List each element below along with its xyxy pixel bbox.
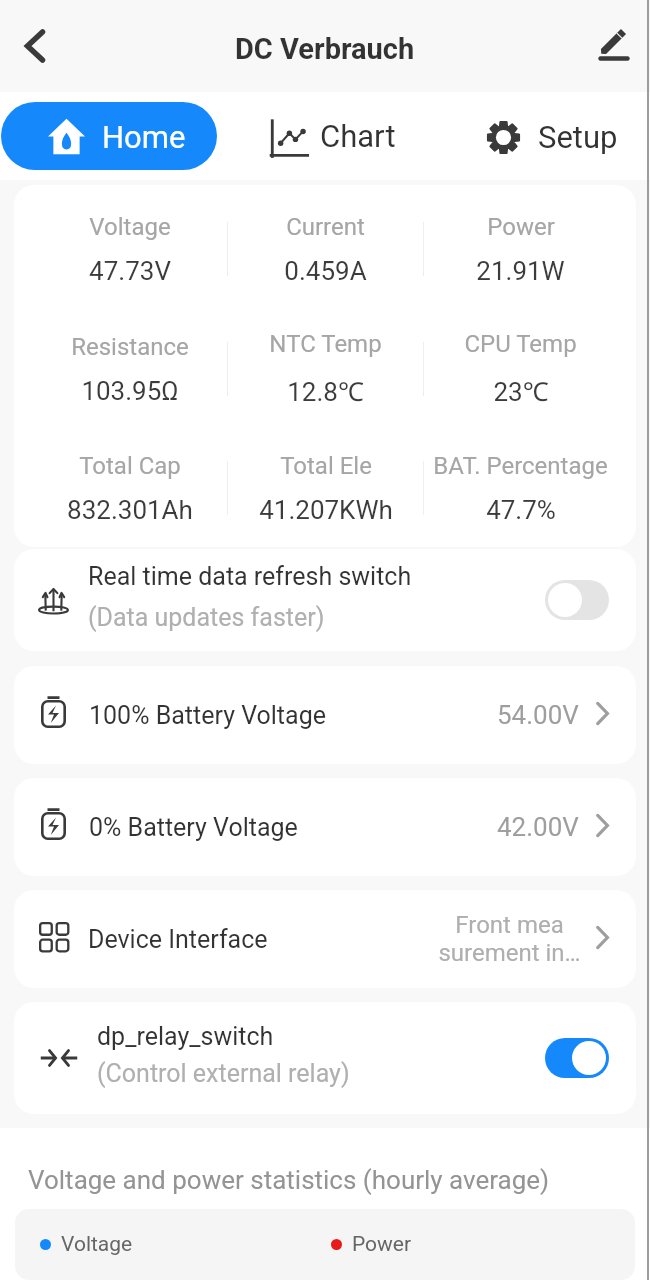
staticText: 103.95Ω [81, 376, 179, 406]
button[interactable]: Edit [590, 22, 638, 70]
staticText: Front mea surement in… [438, 911, 581, 967]
button[interactable]: Switch off [545, 580, 609, 620]
button[interactable]: Chart [216, 92, 433, 180]
button[interactable]: 0% Battery Voltage [14, 778, 636, 876]
staticText: 41.207KWh [259, 495, 393, 525]
staticText: Total Cap [79, 452, 181, 480]
staticText: Current [286, 213, 365, 241]
button[interactable]: Real time data refresh switch [14, 549, 636, 651]
staticText: dp_relay_switch [97, 1022, 274, 1051]
staticText: 47.73V [89, 256, 171, 286]
staticText: (Control external relay) [97, 1059, 350, 1088]
staticText: Real time data refresh switch [88, 562, 412, 591]
staticText: BAT. Percentage [433, 452, 608, 480]
button[interactable]: Back [11, 22, 59, 70]
button[interactable]: Setup [433, 92, 650, 180]
button[interactable]: dp_relay_switch [14, 1002, 636, 1114]
staticText: Voltage [61, 1232, 133, 1257]
staticText: Power [352, 1232, 412, 1257]
staticText: 54.00V [497, 700, 579, 730]
button[interactable]: Switch on [545, 1038, 609, 1078]
staticText: 12.8℃ [287, 373, 364, 408]
staticText: 42.00V [497, 812, 579, 842]
staticText: Resistance [71, 333, 189, 361]
staticText: Voltage and power statistics (hourly ave… [28, 1165, 550, 1195]
staticText: Power [487, 213, 555, 241]
button[interactable]: Home [1, 102, 217, 170]
staticText: 47.7% [486, 495, 556, 525]
button[interactable]: Device Interface [14, 890, 636, 988]
staticText: Device Interface [88, 925, 268, 954]
staticText: Voltage [89, 213, 171, 241]
staticText: DC Verbrauch [235, 32, 415, 66]
staticText: 23℃ [493, 373, 549, 408]
staticText: 21.91W [476, 256, 565, 286]
staticText: Chart [320, 118, 396, 154]
staticText: 0% Battery Voltage [89, 813, 298, 842]
staticText: CPU Temp [464, 330, 577, 358]
staticText: (Data updates faster) [88, 603, 325, 632]
staticText: Setup [538, 119, 618, 155]
staticText: 0.459A [284, 256, 367, 286]
staticText: NTC Temp [269, 330, 382, 358]
staticText: 832.301Ah [67, 495, 193, 525]
staticText: 100% Battery Voltage [89, 701, 326, 730]
staticText: Home [102, 119, 186, 155]
button[interactable]: 100% Battery Voltage [14, 666, 636, 764]
staticText: Total Ele [280, 452, 372, 480]
